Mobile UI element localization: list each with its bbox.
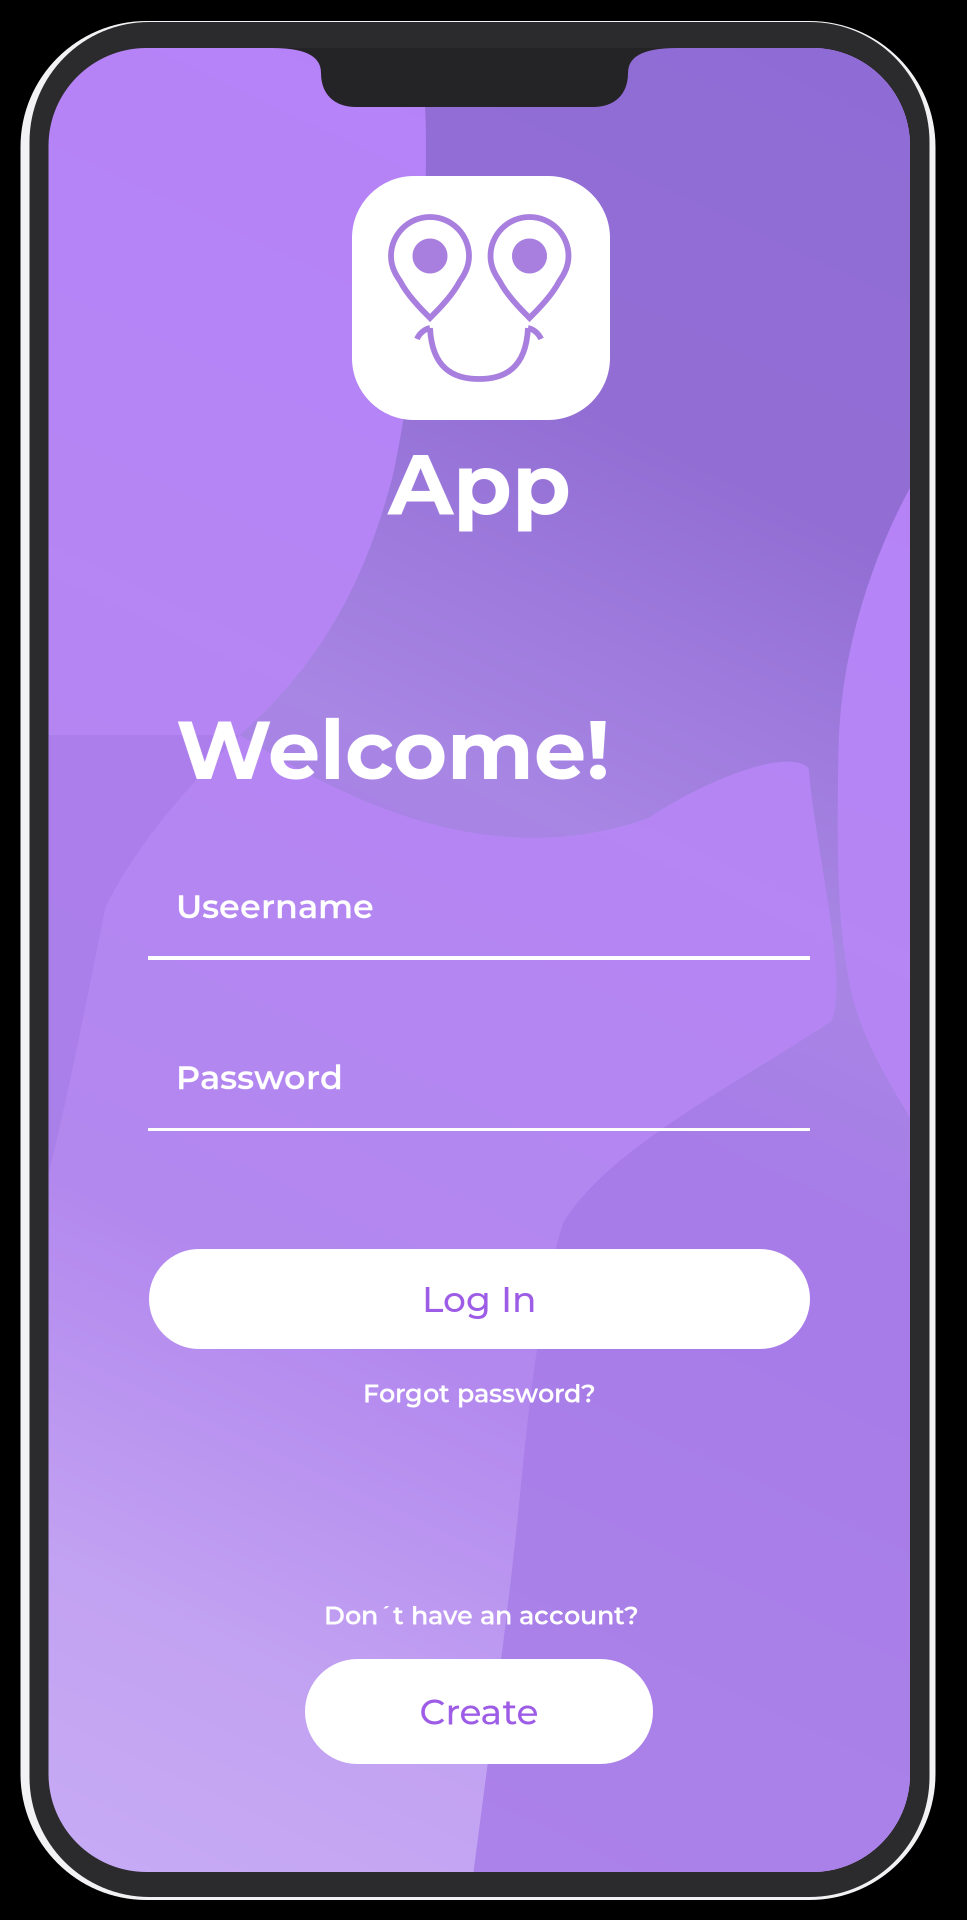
staticText: Don´t have an account? xyxy=(324,1600,639,1631)
staticText: Create xyxy=(419,1690,538,1733)
button[interactable]: Forgot password? xyxy=(363,1378,596,1409)
staticText: Log In xyxy=(422,1277,537,1321)
staticText: Password xyxy=(176,1057,343,1098)
staticText: Welcome! xyxy=(176,699,610,800)
staticText: Forgot password? xyxy=(363,1378,596,1409)
staticText: Useername xyxy=(176,886,374,927)
button[interactable]: Log In xyxy=(149,1249,810,1349)
staticText: App xyxy=(388,432,571,536)
button[interactable]: Create xyxy=(305,1659,653,1764)
